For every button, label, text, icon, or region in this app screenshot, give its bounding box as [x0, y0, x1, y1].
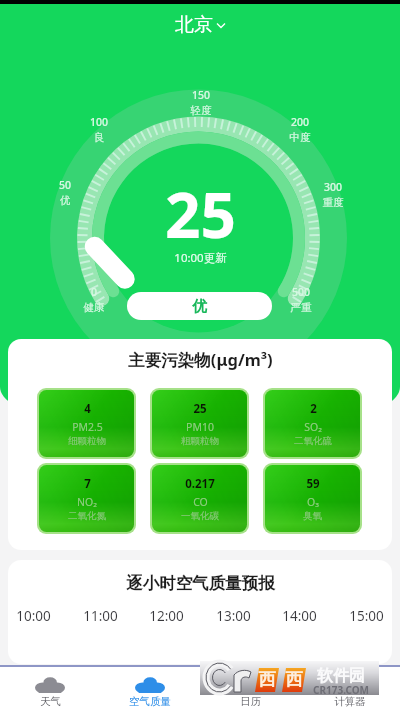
staticText: 15:00	[349, 607, 384, 625]
button[interactable]: 2	[265, 390, 360, 457]
staticText: 7	[84, 476, 91, 492]
button[interactable]: 优	[127, 292, 272, 320]
staticText: PM2.5	[72, 420, 103, 434]
staticText: 14:00	[282, 607, 317, 625]
staticText: O₃	[307, 495, 319, 509]
button[interactable]: 4	[39, 390, 134, 457]
staticText: 臭氧	[303, 510, 322, 522]
staticText: 11:00	[83, 607, 118, 625]
staticText: 2	[310, 401, 317, 417]
staticText: 10:00	[16, 607, 51, 625]
staticText: CR173.COM	[308, 683, 374, 697]
staticText: 细颗粒物	[68, 435, 106, 447]
button[interactable]: 7	[39, 465, 134, 532]
staticText: PM10	[186, 420, 214, 434]
staticText: 轻度	[161, 104, 241, 117]
button[interactable]: 计算器	[300, 665, 400, 710]
staticText: 逐小时空气质量预报	[126, 573, 275, 594]
staticText: 100	[59, 115, 139, 129]
staticText: 严重	[261, 301, 341, 314]
staticText: 主要污染物(μg/m³)	[128, 348, 273, 371]
staticText: CO	[193, 495, 208, 509]
staticText: 200	[260, 115, 340, 129]
staticText: NO₂	[77, 495, 97, 509]
button[interactable]: 北京	[0, 0, 400, 50]
staticText: 天气	[40, 695, 61, 708]
staticText: 粗颗粒物	[181, 435, 219, 447]
button[interactable]: 天气	[0, 665, 100, 710]
staticText: 西	[256, 669, 278, 690]
staticText: 一氧化碳	[181, 510, 219, 522]
staticText: 12:00	[149, 607, 184, 625]
staticText: 北京	[175, 13, 213, 37]
staticText: 59	[306, 476, 320, 492]
staticText: 25	[193, 401, 207, 417]
staticText: 优	[25, 194, 105, 207]
staticText: 0	[54, 285, 134, 299]
button[interactable]: 日历	[200, 665, 300, 710]
staticText: 日历	[240, 695, 261, 708]
staticText: 二氧化氮	[68, 510, 106, 522]
staticText: 中度	[260, 131, 340, 144]
button[interactable]: 25	[152, 390, 247, 457]
staticText: 健康	[54, 301, 134, 314]
staticText: 4	[84, 401, 91, 417]
staticText: 西	[283, 669, 305, 690]
staticText: 良	[59, 131, 139, 144]
staticText: 500	[261, 285, 341, 299]
staticText: 重度	[293, 196, 373, 209]
staticText: 300	[293, 180, 373, 194]
staticText: 10:00更新	[174, 250, 227, 266]
staticText: 优	[192, 297, 207, 316]
button[interactable]: 0.217	[152, 465, 247, 532]
button[interactable]: 空气质量	[100, 665, 200, 710]
staticText: 空气质量	[129, 695, 171, 708]
staticText: 0.217	[185, 476, 215, 492]
staticText: 软件园	[308, 666, 374, 686]
staticText: 150	[161, 88, 241, 102]
staticText: SO₂	[304, 420, 322, 434]
staticText: 二氧化硫	[294, 435, 332, 447]
staticText: 50	[25, 178, 105, 192]
button[interactable]: 59	[265, 465, 360, 532]
staticText: 25	[165, 172, 236, 256]
staticText: 计算器	[334, 695, 366, 708]
staticText: 13:00	[216, 607, 251, 625]
